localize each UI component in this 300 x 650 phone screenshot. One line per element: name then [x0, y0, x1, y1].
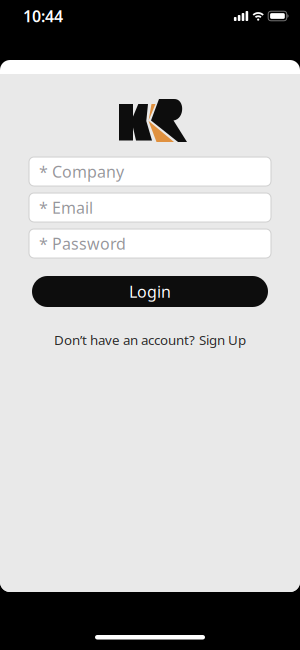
staticText: * Email [39, 197, 93, 218]
staticText: * Password [39, 233, 126, 254]
staticText: Don’t have an account? [54, 331, 195, 349]
staticText: 10:44 [23, 5, 63, 27]
button[interactable]: * Email [29, 193, 271, 222]
button[interactable]: * Company [29, 157, 271, 186]
button[interactable]: Sign Up [199, 331, 246, 349]
staticText: * Company [39, 161, 124, 182]
staticText: Login [129, 281, 171, 302]
button[interactable]: Login [32, 276, 268, 307]
staticText: Sign Up [199, 331, 246, 349]
button[interactable]: * Password [29, 229, 271, 258]
